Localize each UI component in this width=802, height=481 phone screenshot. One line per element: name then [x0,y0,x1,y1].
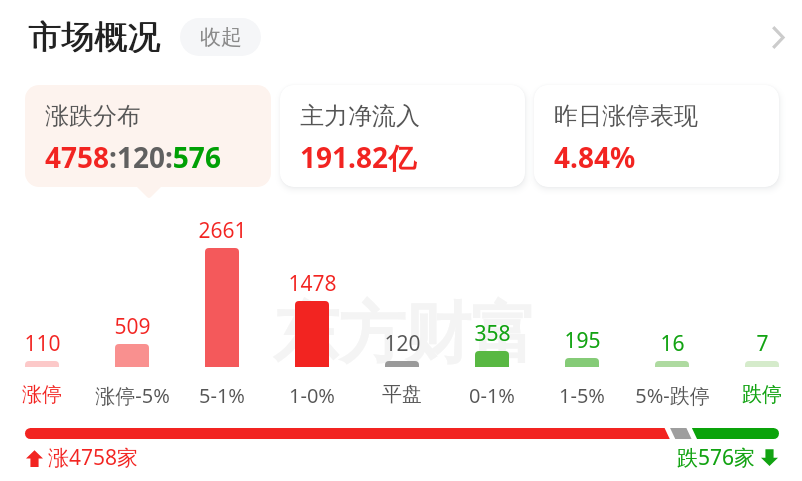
button[interactable]: 收起 [180,18,261,56]
staticText: 4758:120:576 [45,138,221,176]
staticText: 涨跌分布 [45,101,141,131]
staticText: 平盘 [382,382,422,407]
button[interactable]: 涨跌分布 [25,85,271,187]
staticText: 16 [660,329,685,358]
staticText: 358 [474,319,511,348]
staticText: 7 [756,329,769,358]
staticText: 195 [564,326,601,355]
staticText: 昨日涨停表现 [554,101,698,131]
staticText: 跌停 [742,382,782,407]
staticText: 4.84% [554,138,636,176]
staticText: 2661 [198,216,247,245]
staticText: 110 [24,329,61,358]
staticText: 涨4758家 [48,443,139,472]
staticText: 120 [384,329,421,358]
staticText: 0-1% [469,382,515,409]
staticText: 191.82亿 [300,138,416,176]
staticText: 1-0% [289,382,335,409]
staticText: 市场概况 [29,16,161,58]
staticText: 509 [114,312,151,341]
button[interactable]: 跌576家 [677,443,778,472]
staticText: 跌576家 [677,443,756,472]
button[interactable]: 涨4758家 [26,443,139,472]
button[interactable]: More [756,15,800,59]
staticText: 1-5% [559,382,605,409]
staticText: 涨停-5% [95,382,170,409]
staticText: 收起 [200,24,242,50]
staticText: 东方财富 [273,292,537,375]
staticText: 5-1% [199,382,245,409]
staticText: 市场概况 [28,16,160,58]
staticText: 5%-跌停 [635,382,710,409]
staticText: 1478 [288,269,337,298]
button[interactable]: 主力净流入 [280,85,525,187]
staticText: 涨停 [22,382,62,407]
button[interactable]: 昨日涨停表现 [534,85,779,187]
staticText: 主力净流入 [300,101,420,131]
